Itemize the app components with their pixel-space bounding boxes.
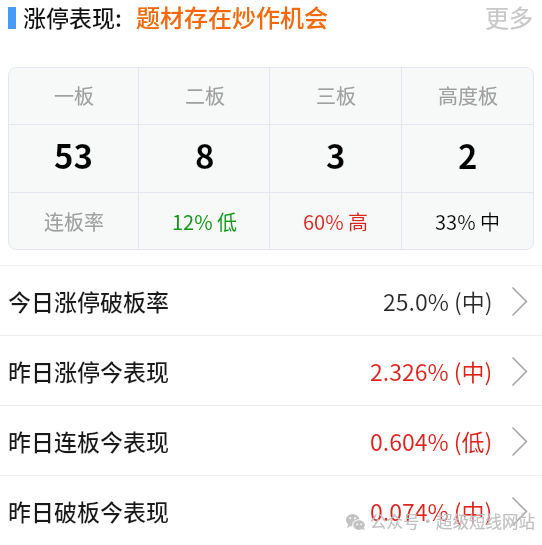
staticText: 25.0% (中) xyxy=(383,284,493,317)
button[interactable]: 更多 xyxy=(474,0,542,36)
staticText: 昨日破板今表现 xyxy=(8,494,169,527)
staticText: 33% 中 xyxy=(435,207,501,236)
staticText: 一板 xyxy=(54,81,94,110)
staticText: 题材存在炒作机会 xyxy=(136,0,328,34)
staticText: 昨日涨停今表现 xyxy=(8,354,169,387)
staticText: 60% 高 xyxy=(303,207,369,236)
button[interactable]: 昨日涨停今表现 xyxy=(0,336,542,405)
staticText: 今日涨停破板率 xyxy=(8,284,169,317)
staticText: 高度板 xyxy=(438,81,498,110)
staticText: 连板率 xyxy=(44,207,104,236)
staticText: 三板 xyxy=(316,81,356,110)
staticText: 更多 xyxy=(485,0,533,34)
staticText: 8 xyxy=(195,131,215,179)
staticText: 涨停表现: xyxy=(23,0,122,33)
staticText: 12% 低 xyxy=(172,207,238,236)
staticText: 2 xyxy=(458,131,478,179)
staticText: 0.074% (中) xyxy=(370,494,493,527)
button[interactable]: 今日涨停破板率 xyxy=(0,266,542,335)
staticText: 昨日连板今表现 xyxy=(8,424,169,457)
staticText: 0.604% (低) xyxy=(370,424,493,457)
staticText: 2.326% (中) xyxy=(370,354,493,387)
staticText: 3 xyxy=(326,131,346,179)
staticText: 53 xyxy=(54,131,93,179)
button[interactable]: 昨日破板今表现 xyxy=(0,476,542,545)
staticText: 公众号·超级短线网站 xyxy=(370,509,535,533)
button[interactable]: 昨日连板今表现 xyxy=(0,406,542,475)
staticText: 二板 xyxy=(185,81,225,110)
